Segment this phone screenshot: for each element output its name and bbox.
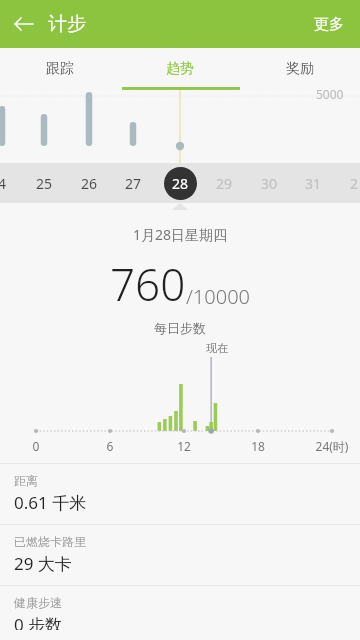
- button[interactable]: 奖励: [240, 48, 360, 90]
- button[interactable]: 31: [295, 165, 331, 201]
- staticText: 30: [261, 174, 278, 193]
- button[interactable]: 30: [251, 165, 287, 201]
- staticText: 更多: [314, 15, 344, 34]
- staticText: 0 步数: [14, 613, 63, 630]
- button[interactable]: 更多: [298, 3, 360, 46]
- button[interactable]: 跟踪: [0, 48, 120, 90]
- staticText: 29 大卡: [14, 552, 72, 575]
- staticText: 12: [166, 438, 202, 454]
- staticText: 健康步速: [14, 595, 62, 610]
- staticText: 31: [305, 174, 322, 193]
- button[interactable]: 趋势: [120, 48, 240, 90]
- staticText: 25: [36, 174, 53, 193]
- staticText: 760: [110, 254, 186, 314]
- staticText: 28: [172, 174, 189, 193]
- button[interactable]: 26: [71, 165, 107, 201]
- button[interactable]: 距离: [0, 463, 360, 524]
- staticText: 跟踪: [46, 60, 74, 78]
- button[interactable]: 29: [206, 165, 242, 201]
- staticText: 26: [81, 174, 98, 193]
- button[interactable]: 已燃烧卡路里: [0, 524, 360, 585]
- staticText: 趋势: [166, 60, 194, 78]
- staticText: /10000: [186, 283, 251, 310]
- staticText: 24(时): [314, 438, 350, 454]
- staticText: 2: [350, 174, 359, 193]
- button[interactable]: 25: [26, 165, 62, 201]
- button[interactable]: 4: [0, 165, 20, 201]
- staticText: 每日步数: [154, 320, 206, 335]
- staticText: 29: [216, 174, 233, 193]
- staticText: 0.61 千米: [14, 491, 87, 514]
- button[interactable]: Back: [0, 0, 48, 48]
- staticText: 1月28日星期四: [133, 225, 228, 244]
- button[interactable]: 健康步速: [0, 585, 360, 640]
- button[interactable]: 27: [115, 165, 151, 201]
- staticText: 现在: [206, 341, 228, 355]
- button[interactable]: 2: [336, 165, 360, 201]
- staticText: 5000: [316, 86, 344, 102]
- staticText: 4: [0, 174, 7, 193]
- staticText: 已燃烧卡路里: [14, 534, 86, 549]
- staticText: 距离: [14, 473, 38, 488]
- staticText: 0: [18, 438, 54, 454]
- staticText: 27: [125, 174, 142, 193]
- button[interactable]: 28: [162, 165, 198, 201]
- staticText: 18: [240, 438, 276, 454]
- staticText: 6: [92, 438, 128, 454]
- staticText: 奖励: [286, 60, 314, 78]
- staticText: 计步: [48, 12, 86, 36]
